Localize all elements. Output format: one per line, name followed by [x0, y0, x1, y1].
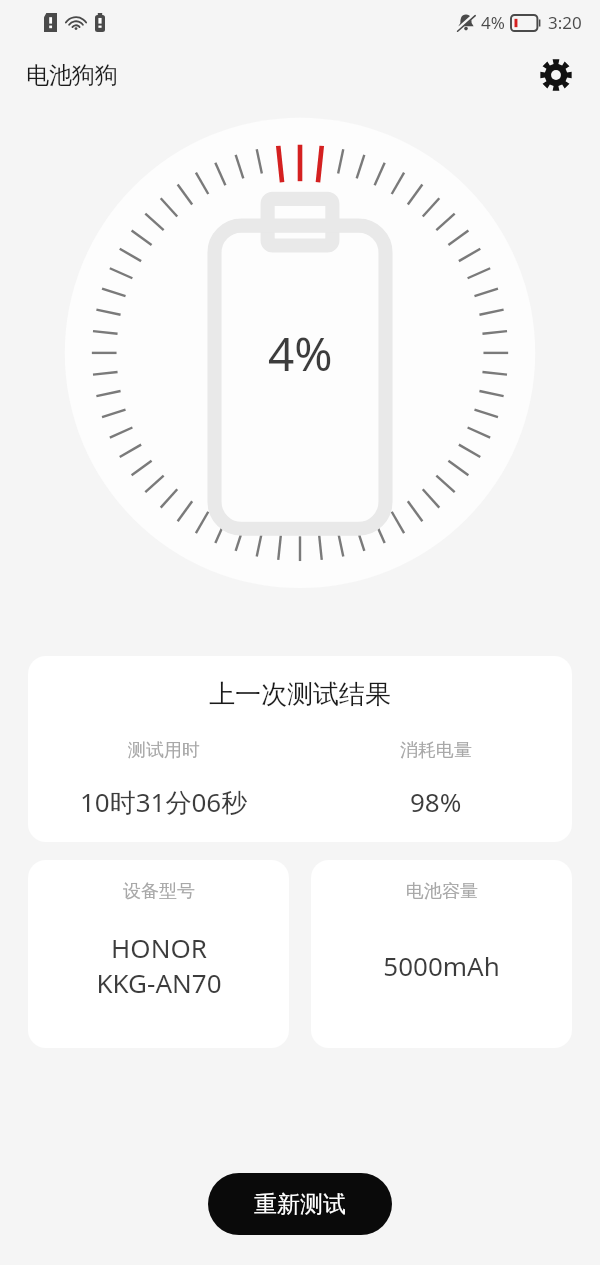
staticText: 测试用时: [128, 739, 200, 762]
staticText: 5000mAh: [383, 948, 500, 983]
staticText: KKG-AN70: [96, 965, 222, 1000]
staticText: 重新测试: [254, 1190, 346, 1219]
staticText: 电池容量: [406, 880, 478, 903]
staticText: 98%: [410, 784, 462, 819]
staticText: 设备型号: [123, 880, 195, 903]
staticText: 10时31分06秒: [80, 784, 248, 820]
button[interactable]: 设备型号: [28, 860, 289, 1048]
button[interactable]: 重新测试: [208, 1173, 392, 1235]
button[interactable]: 电池容量: [311, 860, 572, 1048]
staticText: 3:20: [548, 11, 582, 34]
staticText: 上一次测试结果: [28, 678, 572, 711]
staticText: 电池狗狗: [26, 61, 118, 90]
staticText: 消耗电量: [400, 739, 472, 762]
button[interactable]: 上一次测试结果: [28, 656, 572, 842]
button[interactable]: Settings: [532, 51, 580, 99]
staticText: HONOR: [111, 930, 207, 965]
staticText: 4%: [481, 11, 505, 34]
staticText: 4%: [268, 322, 333, 385]
